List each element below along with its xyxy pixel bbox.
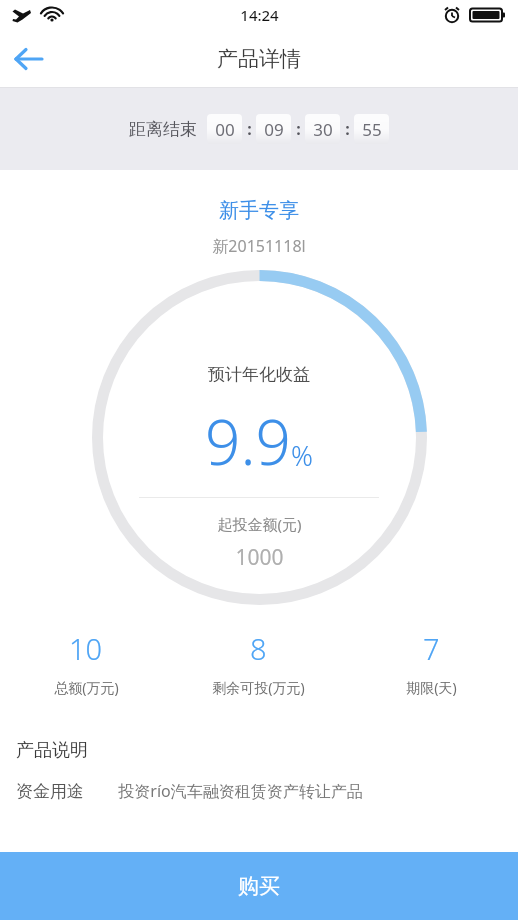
button[interactable]: 资金用途 [16, 780, 502, 802]
button[interactable]: 7 [345, 629, 518, 697]
staticText: 产品详情 [217, 46, 301, 72]
staticText: 55 [362, 118, 382, 141]
staticText: 预计年化收益 [208, 364, 310, 385]
staticText: 期限(天) [406, 678, 457, 697]
staticText: 购买 [238, 873, 280, 899]
staticText: 1000 [235, 543, 284, 572]
staticText: % [291, 437, 313, 474]
staticText: 09 [264, 118, 284, 141]
staticText: 00 [215, 118, 235, 141]
staticText: 14:24 [240, 5, 279, 25]
staticText: 投资río汽车融资租赁资产转让产品 [118, 780, 363, 802]
staticText: 7 [423, 629, 440, 668]
staticText: 产品说明 [16, 739, 88, 762]
button[interactable]: 8 [172, 629, 345, 697]
button[interactable]: 10 [0, 629, 172, 697]
staticText: : [247, 118, 252, 140]
button[interactable]: Back [0, 30, 58, 88]
button[interactable]: 购买 [0, 852, 518, 920]
staticText: 新20151118l [0, 235, 518, 257]
staticText: 距离结束 [129, 119, 197, 140]
staticText: 9.9 [205, 399, 291, 483]
staticText: 8 [250, 629, 267, 668]
staticText: 剩余可投(万元) [212, 678, 305, 697]
staticText: : [345, 118, 350, 140]
staticText: 新手专享 [0, 198, 518, 223]
staticText: 起投金额(元) [217, 514, 302, 534]
staticText: 资金用途 [16, 781, 84, 802]
staticText: 10 [69, 629, 103, 668]
staticText: 30 [313, 118, 333, 141]
staticText: 总额(万元) [54, 678, 119, 697]
staticText: : [296, 118, 301, 140]
